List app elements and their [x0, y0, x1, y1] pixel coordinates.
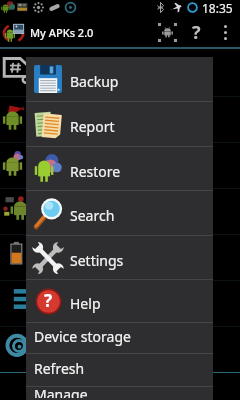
button[interactable]: More options	[210, 15, 240, 49]
button[interactable]: Report	[26, 102, 213, 146]
button[interactable]: Help	[182, 15, 210, 49]
staticText: Refresh	[34, 359, 85, 378]
button[interactable]: Refresh	[26, 354, 213, 386]
button[interactable]: Restore	[26, 147, 213, 190]
staticText: ?	[192, 20, 201, 45]
staticText: ?	[44, 289, 53, 312]
staticText: Report	[70, 117, 115, 136]
staticText: Help	[70, 294, 101, 313]
staticText: Restore	[70, 162, 121, 181]
button[interactable]: Device storage	[26, 323, 213, 353]
staticText: Device storage	[34, 327, 131, 346]
button[interactable]: Share apps	[152, 15, 182, 49]
staticText: Backup	[70, 72, 119, 91]
staticText: My APKs 2.0	[30, 25, 94, 40]
button[interactable]: Backup	[26, 57, 213, 101]
staticText: Manage	[34, 385, 88, 398]
staticText: Search	[70, 206, 115, 225]
staticText: 18:35	[202, 0, 233, 15]
button[interactable]: Manage	[26, 387, 213, 400]
button[interactable]: ?	[26, 280, 213, 322]
button[interactable]: Settings	[26, 236, 213, 279]
staticText: Settings	[70, 251, 124, 270]
button[interactable]: Search	[26, 191, 213, 235]
